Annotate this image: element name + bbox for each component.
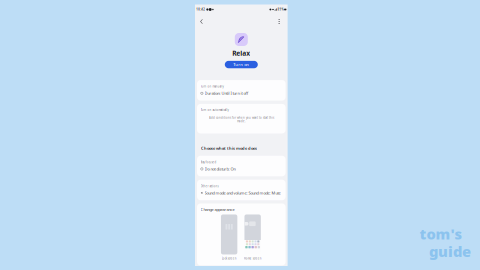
- button[interactable]: Stay focused: [197, 156, 286, 176]
- staticText: tom's: [419, 224, 462, 243]
- staticText: Add conditions for when you want to star…: [209, 116, 274, 123]
- staticText: Duration: Until I turn it off: [204, 91, 248, 96]
- staticText: Choose what this mode does: [201, 145, 257, 151]
- button[interactable]: Turn on: [225, 61, 258, 68]
- button[interactable]: Turn on manually: [197, 80, 286, 101]
- button[interactable]: Other actions: [197, 180, 286, 200]
- staticText: Relax: [232, 49, 250, 58]
- button[interactable]: Home screen: [244, 214, 262, 260]
- staticText: Turn on manually: [201, 85, 224, 88]
- staticText: Turn on: [233, 62, 249, 67]
- staticText: 89%: [278, 8, 284, 11]
- staticText: Stay focused: [201, 160, 217, 164]
- staticText: Home screen: [244, 257, 262, 260]
- staticText: Lock screen: [222, 257, 237, 260]
- staticText: Change appearance: [201, 207, 235, 212]
- staticText: Other actions: [201, 184, 219, 188]
- button[interactable]: Back: [197, 15, 206, 28]
- button[interactable]: Lock screen: [221, 214, 237, 260]
- button[interactable]: More options: [273, 15, 286, 28]
- staticText: Sound mode and volume: Sound mode: Mute: [204, 190, 280, 195]
- staticText: 10:42: [196, 8, 205, 11]
- staticText: Turn on automatically: [201, 108, 229, 112]
- staticText: guide: [429, 241, 471, 261]
- staticText: Do not disturb: On: [204, 166, 235, 172]
